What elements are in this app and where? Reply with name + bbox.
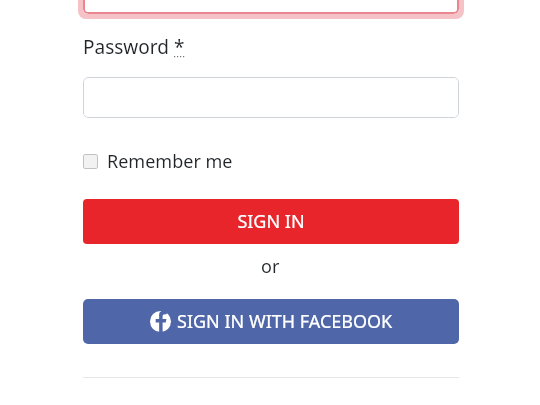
button[interactable]: SIGN IN WITH FACEBOOK bbox=[83, 299, 459, 344]
staticText: SIGN IN bbox=[237, 209, 305, 234]
button[interactable]: SIGN IN bbox=[83, 199, 459, 244]
staticText: SIGN IN WITH FACEBOOK bbox=[177, 309, 393, 334]
staticText: or bbox=[261, 254, 280, 279]
button[interactable]: Remember me bbox=[83, 148, 233, 174]
button[interactable] bbox=[83, 77, 459, 118]
staticText: * bbox=[174, 34, 185, 60]
staticText: Password bbox=[83, 34, 169, 60]
staticText: Remember me bbox=[107, 149, 233, 174]
button[interactable] bbox=[83, 0, 459, 14]
